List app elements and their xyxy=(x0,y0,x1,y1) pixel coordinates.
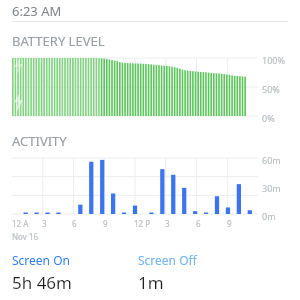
staticText: ACTIVITY xyxy=(12,132,67,150)
staticText: 5h 46m xyxy=(12,271,72,294)
staticText: 30m xyxy=(262,182,281,194)
button[interactable]: Screen On xyxy=(12,252,138,294)
staticText: 6:23 AM xyxy=(12,2,62,20)
button[interactable]: 6:23 AM xyxy=(0,0,300,21)
staticText: 0m xyxy=(262,210,276,222)
staticText: 12 A xyxy=(12,218,29,229)
staticText: 0% xyxy=(262,112,275,124)
staticText: Nov 16 xyxy=(12,231,39,242)
staticText: 12 P xyxy=(134,218,151,229)
staticText: BATTERY LEVEL xyxy=(12,32,105,50)
staticText: 60m xyxy=(262,154,281,166)
staticText: 50% xyxy=(262,83,280,95)
button[interactable]: Screen Off xyxy=(138,252,278,294)
staticText: 3 xyxy=(42,218,47,229)
staticText: Screen On xyxy=(12,252,70,268)
staticText: 100% xyxy=(262,54,285,66)
staticText: 1m xyxy=(138,271,164,294)
staticText: 9 xyxy=(227,218,232,229)
staticText: 6 xyxy=(72,218,77,229)
button[interactable]: Battery level chart xyxy=(12,54,258,120)
staticText: Screen Off xyxy=(138,252,197,268)
button[interactable]: Activity chart xyxy=(12,154,258,218)
staticText: 6 xyxy=(196,218,201,229)
staticText: 9 xyxy=(103,218,108,229)
staticText: 3 xyxy=(165,218,170,229)
